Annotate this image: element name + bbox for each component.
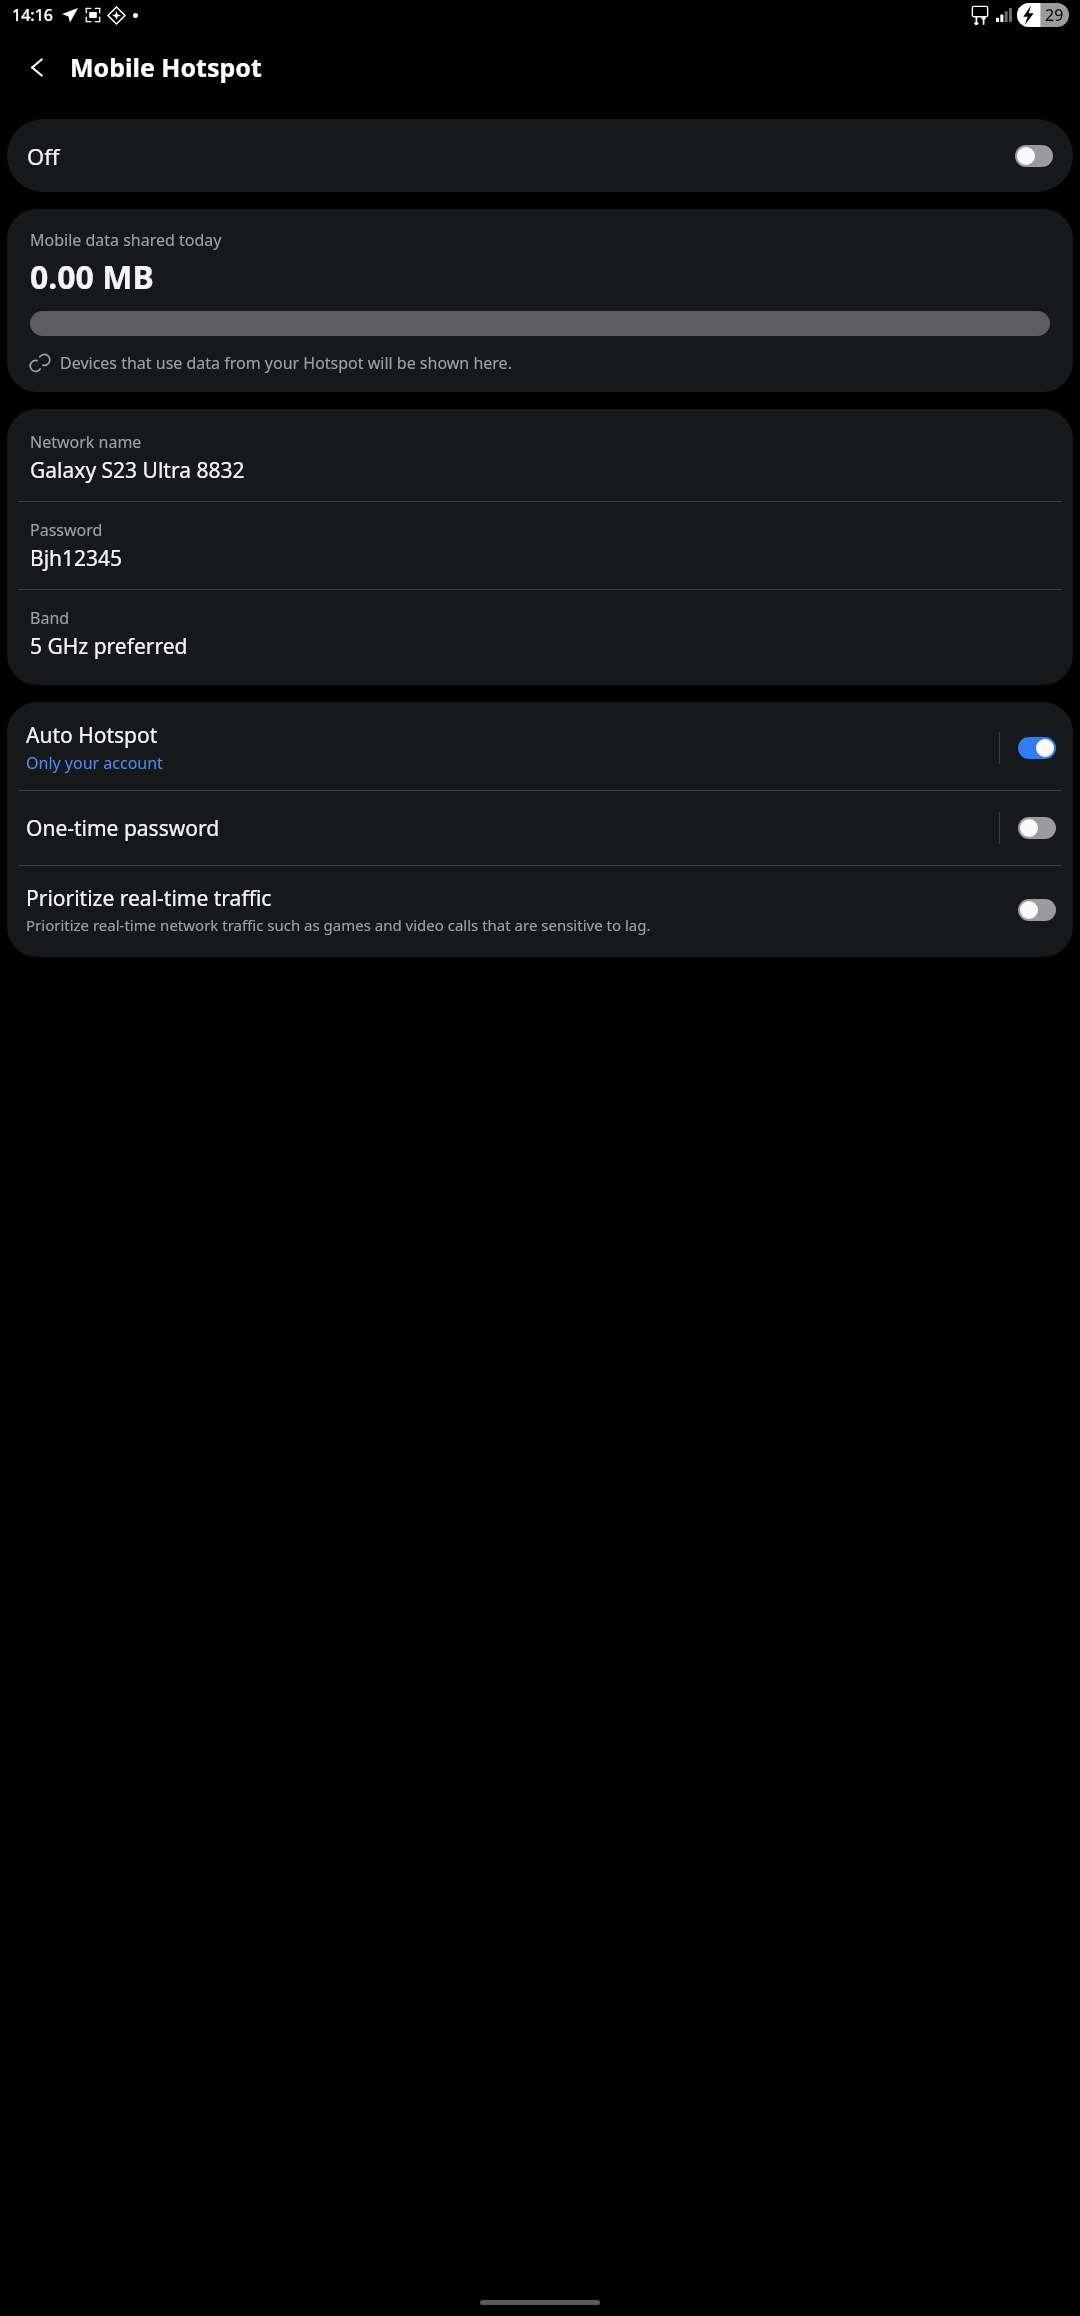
staticText: Only your account xyxy=(26,752,163,774)
staticText: Prioritize real-time network traffic suc… xyxy=(26,915,651,935)
staticText: Galaxy S23 Ultra 8832 xyxy=(30,456,245,485)
button[interactable]: Off xyxy=(7,119,1073,192)
button[interactable]: One-time password toggle xyxy=(1018,817,1056,839)
staticText: Off xyxy=(27,141,60,171)
button[interactable]: Band xyxy=(7,590,1073,685)
button[interactable]: Auto Hotspot toggle xyxy=(1018,737,1056,759)
staticText: 5 GHz preferred xyxy=(30,632,188,661)
staticText: 29 xyxy=(1045,4,1064,26)
staticText: Prioritize real-time traffic xyxy=(26,884,272,913)
button[interactable]: Network name xyxy=(7,409,1073,501)
button[interactable]: Auto Hotspot xyxy=(7,702,1073,790)
staticText: Password xyxy=(30,519,103,541)
staticText: 14:16 xyxy=(12,4,53,26)
staticText: Bjh12345 xyxy=(30,544,123,573)
button[interactable]: Back xyxy=(14,44,60,90)
staticText: Band xyxy=(30,607,70,629)
button[interactable]: Password xyxy=(7,502,1073,589)
staticText: Auto Hotspot xyxy=(26,721,158,750)
staticText: Network name xyxy=(30,431,142,453)
button[interactable]: Hotspot off xyxy=(1015,145,1053,167)
button[interactable]: One-time password xyxy=(7,791,1073,865)
staticText: 0.00 MB xyxy=(30,255,154,299)
staticText: Mobile data shared today xyxy=(30,229,222,251)
button[interactable]: Prioritize real-time traffic xyxy=(7,866,1073,957)
staticText: Mobile Hotspot xyxy=(70,50,262,84)
staticText: Devices that use data from your Hotspot … xyxy=(60,352,512,374)
button[interactable]: Prioritize real-time traffic toggle xyxy=(1018,899,1056,921)
staticText: One-time password xyxy=(26,814,220,843)
